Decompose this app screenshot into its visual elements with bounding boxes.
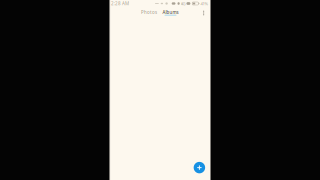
button[interactable]: Add (194, 162, 205, 173)
staticText: 4G (181, 1, 186, 6)
button[interactable]: Albums (160, 7, 181, 20)
staticText: 41% (200, 1, 208, 6)
staticText: Photos (141, 9, 157, 15)
button[interactable]: More options (199, 6, 208, 19)
staticText: Albums (162, 9, 178, 15)
staticText: 2:28 AM (111, 0, 129, 7)
button[interactable]: Photos (139, 7, 160, 20)
